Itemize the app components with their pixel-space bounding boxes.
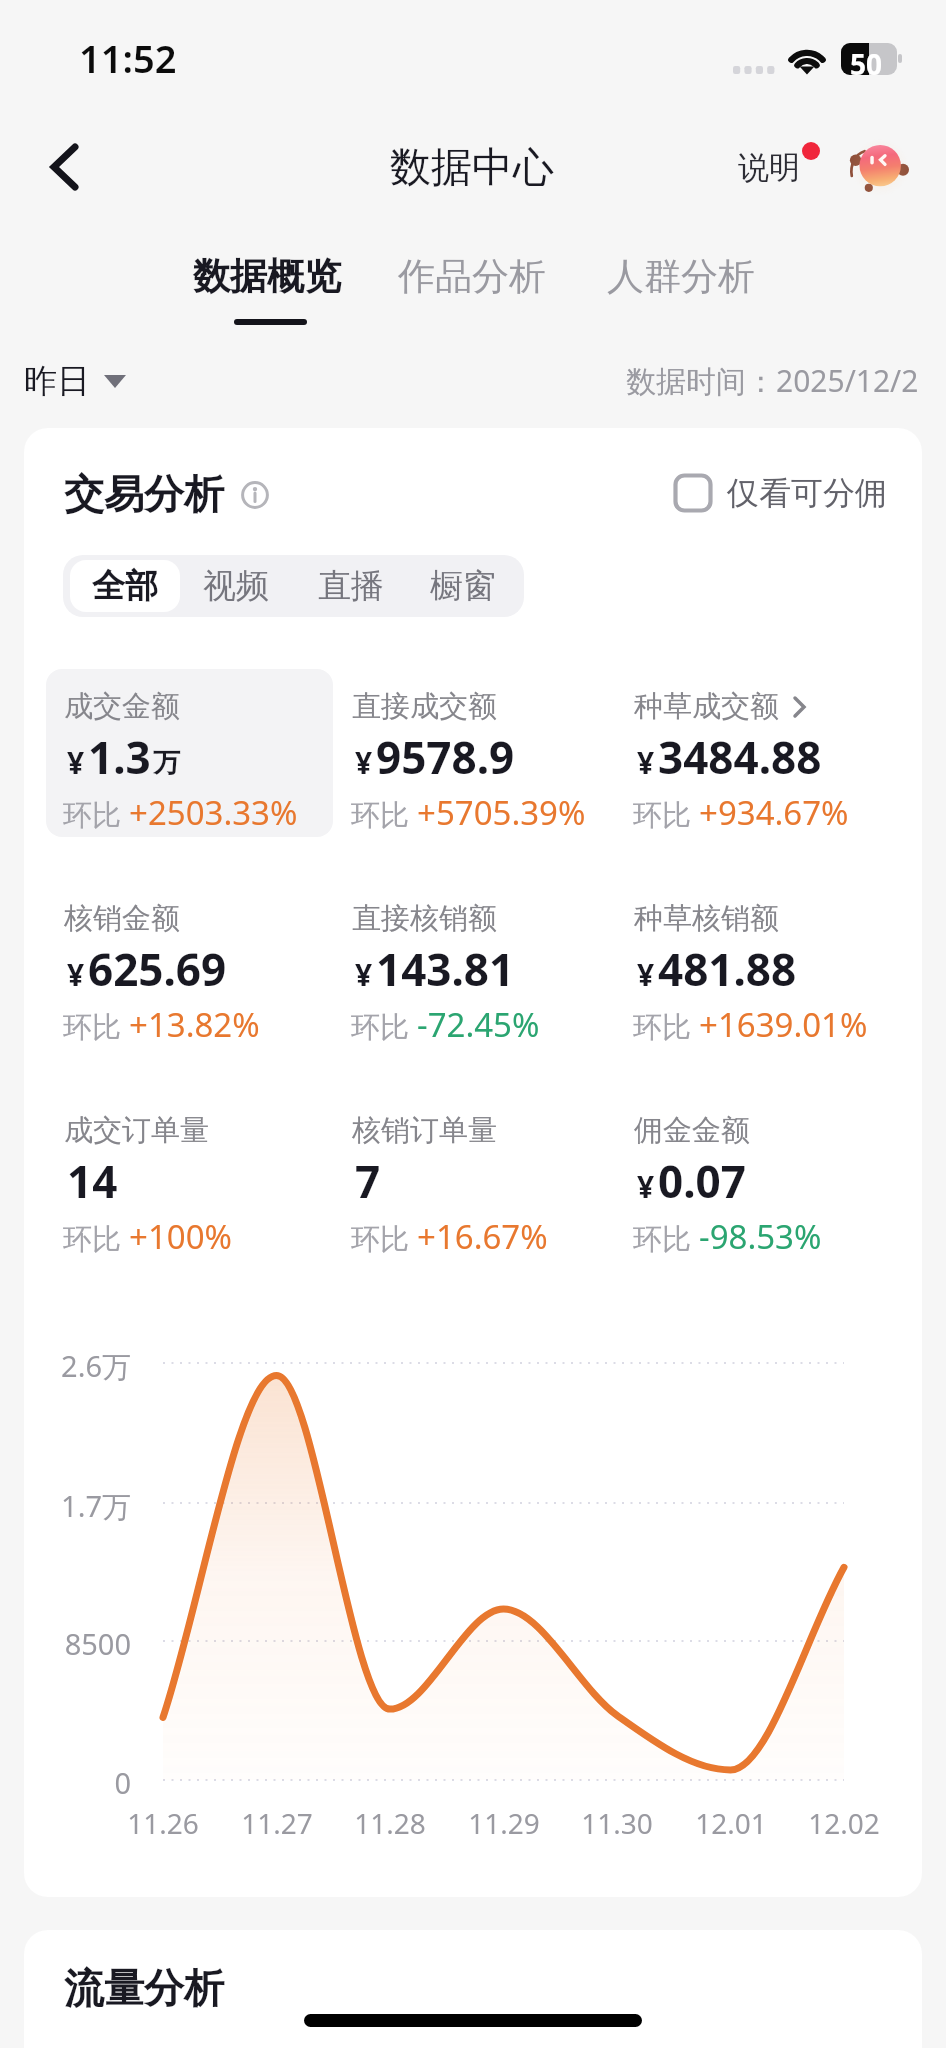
staticText: 万 xyxy=(146,743,181,780)
button[interactable]: 成交金额 xyxy=(46,669,333,837)
staticText: 全部 xyxy=(92,565,158,607)
button[interactable]: 种草成交额 xyxy=(616,669,903,837)
button[interactable]: 全部 xyxy=(70,560,180,612)
staticText: 0.07 xyxy=(658,1151,746,1211)
staticText: 直接核销额 xyxy=(352,900,497,937)
staticText: 11.26 xyxy=(103,1804,223,1842)
staticText: 流量分析 xyxy=(64,1963,224,2013)
staticText: 环比 xyxy=(633,797,691,834)
staticText: 视频 xyxy=(203,565,269,607)
button[interactable]: 人群分析 xyxy=(587,238,773,338)
staticText: 交易分析 xyxy=(64,469,224,519)
staticText: ¥ xyxy=(637,954,655,995)
staticText: 12.02 xyxy=(784,1804,904,1842)
staticText: 7 xyxy=(355,1151,381,1211)
staticText: 作品分析 xyxy=(398,253,546,300)
staticText: 橱窗 xyxy=(430,565,496,607)
staticText: -98.53% xyxy=(699,1214,822,1259)
staticText: +100% xyxy=(129,1214,232,1259)
staticText: +2503.33% xyxy=(129,790,298,835)
button[interactable]: 直接成交额 xyxy=(334,669,621,837)
button[interactable]: 数据概览 xyxy=(173,238,359,338)
button[interactable]: Customer service xyxy=(849,135,909,195)
button[interactable]: 视频 xyxy=(186,560,286,612)
staticText: 环比 xyxy=(63,797,121,834)
button[interactable]: 昨日 xyxy=(20,356,130,406)
staticText: ¥ xyxy=(637,742,655,783)
staticText: +5705.39% xyxy=(417,790,586,835)
staticText: 核销订单量 xyxy=(352,1112,497,1149)
button[interactable]: 仅看可分佣 xyxy=(667,467,893,519)
staticText: 9578.9 xyxy=(376,727,515,787)
staticText: ¥ xyxy=(67,954,85,995)
staticText: 12.01 xyxy=(671,1804,791,1842)
staticText: 环比 xyxy=(351,797,409,834)
button[interactable]: 说明 xyxy=(722,136,822,202)
staticText: +13.82% xyxy=(129,1002,260,1047)
staticText: 人群分析 xyxy=(607,253,755,300)
staticText: 成交订单量 xyxy=(64,1112,209,1149)
button[interactable]: 橱窗 xyxy=(413,560,513,612)
button[interactable]: 核销金额 xyxy=(46,881,333,1049)
staticText: 环比 xyxy=(63,1009,121,1046)
staticText: 直播 xyxy=(318,565,384,607)
staticText: -72.45% xyxy=(417,1002,540,1047)
button[interactable]: 直播 xyxy=(301,560,401,612)
staticText: 3484.88 xyxy=(658,727,822,787)
staticText: 11.30 xyxy=(557,1804,677,1842)
staticText: 昨日 xyxy=(24,360,90,402)
staticText: 环比 xyxy=(351,1009,409,1046)
staticText: ¥ xyxy=(637,1166,655,1207)
staticText: 种草成交额 xyxy=(634,688,779,725)
staticText: 2.6万 xyxy=(24,1346,131,1386)
staticText: 环比 xyxy=(633,1009,691,1046)
staticText: 50 xyxy=(850,45,883,77)
staticText: 环比 xyxy=(63,1221,121,1258)
staticText: 143.81 xyxy=(376,939,515,999)
staticText: 481.88 xyxy=(658,939,797,999)
staticText: 11.29 xyxy=(444,1804,564,1842)
button[interactable]: Info xyxy=(232,472,278,518)
staticText: 1.7万 xyxy=(24,1486,131,1526)
staticText: 625.69 xyxy=(88,939,227,999)
staticText: 佣金金额 xyxy=(634,1112,750,1149)
staticText: 仅看可分佣 xyxy=(727,473,887,513)
staticText: +934.67% xyxy=(699,790,849,835)
staticText: 0 xyxy=(24,1763,131,1802)
staticText: 成交金额 xyxy=(64,688,180,725)
staticText: 环比 xyxy=(351,1221,409,1258)
button[interactable]: 佣金金额 xyxy=(616,1093,903,1261)
staticText: 数据概览 xyxy=(193,253,341,300)
button[interactable]: 核销订单量 xyxy=(334,1093,621,1261)
staticText: 11:52 xyxy=(79,32,177,84)
staticText: 种草核销额 xyxy=(634,900,779,937)
staticText: 核销金额 xyxy=(64,900,180,937)
staticText: 数据中心 xyxy=(390,142,554,194)
button[interactable]: 成交订单量 xyxy=(46,1093,333,1261)
staticText: 直接成交额 xyxy=(352,688,497,725)
staticText: ¥ xyxy=(355,954,373,995)
staticText: 11.28 xyxy=(330,1804,450,1842)
staticText: 说明 xyxy=(738,148,800,187)
staticText: 数据时间：2025/12/2 xyxy=(626,360,919,401)
staticText: +16.67% xyxy=(417,1214,548,1259)
staticText: 环比 xyxy=(633,1221,691,1258)
staticText: +1639.01% xyxy=(699,1002,868,1047)
staticText: 8500 xyxy=(24,1624,131,1663)
staticText: 11.27 xyxy=(217,1804,337,1842)
button[interactable]: 种草核销额 xyxy=(616,881,903,1049)
button[interactable]: Back xyxy=(24,127,104,207)
staticText: ¥ xyxy=(355,742,373,783)
staticText: ¥ xyxy=(67,742,85,783)
staticText: 1.3 xyxy=(88,727,151,787)
button[interactable]: 直接核销额 xyxy=(334,881,621,1049)
staticText: 14 xyxy=(67,1151,118,1211)
button[interactable]: 作品分析 xyxy=(378,238,564,338)
